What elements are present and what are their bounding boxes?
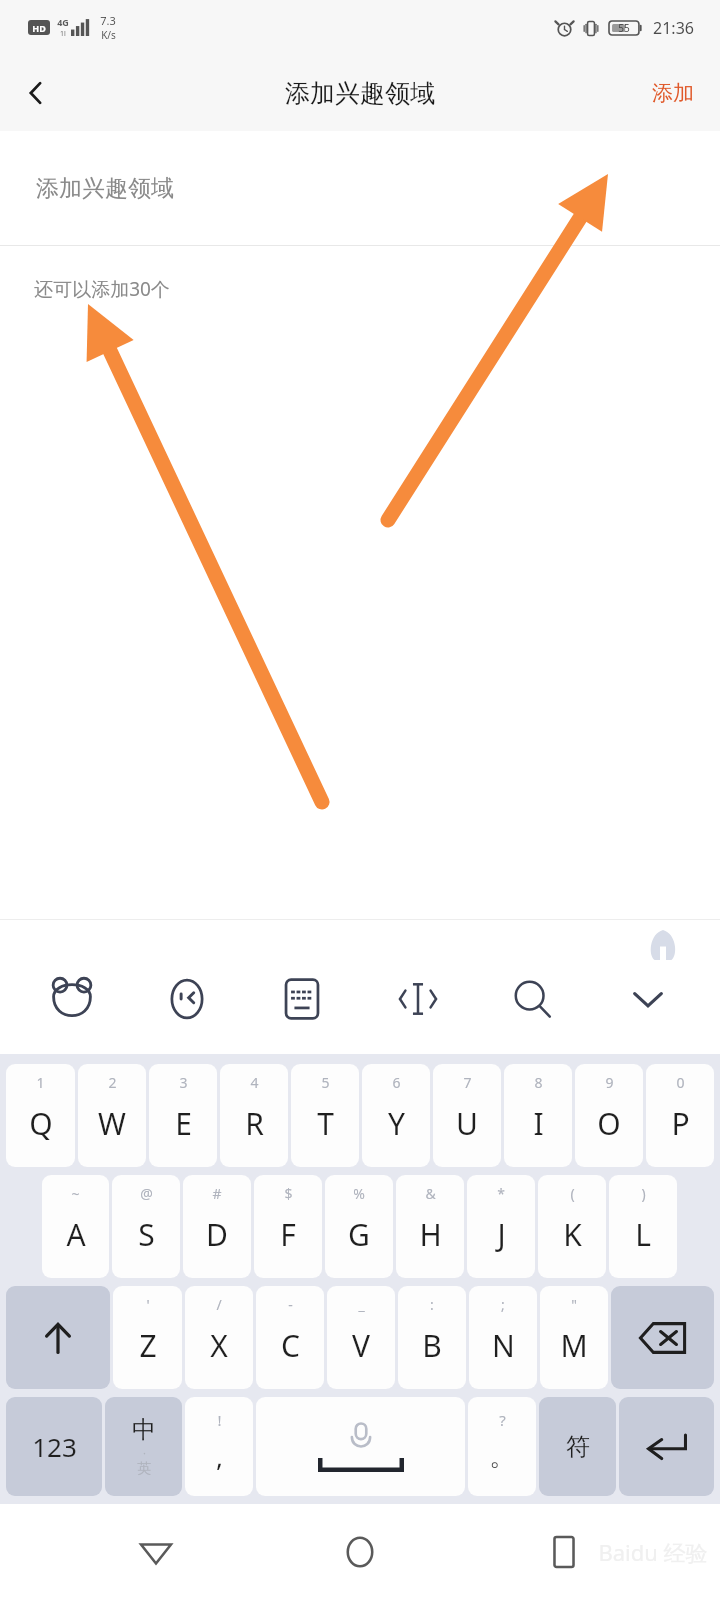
button[interactable]: & [396, 1175, 464, 1278]
button[interactable]: Backspace [611, 1286, 714, 1389]
button[interactable]: Recents [516, 1504, 612, 1600]
staticText: D [206, 1214, 228, 1255]
staticText: ? [499, 1410, 506, 1430]
button[interactable]: _ [327, 1286, 395, 1389]
staticText: P [671, 1103, 690, 1144]
staticText: X [210, 1325, 228, 1366]
staticText: $ [284, 1184, 293, 1203]
staticText: 4 [250, 1073, 259, 1092]
staticText: ~ [71, 1184, 80, 1203]
staticText: ' [146, 1295, 150, 1314]
staticText: W [98, 1103, 126, 1144]
button[interactable]: Cursor control [375, 962, 461, 1036]
button[interactable]: Baidu input [29, 962, 115, 1036]
button[interactable]: % [325, 1175, 393, 1278]
button[interactable]: 添加兴趣领域 [0, 131, 720, 245]
button[interactable]: Shift [6, 1286, 110, 1389]
staticText: , [216, 1439, 223, 1474]
button[interactable]: ; [469, 1286, 537, 1389]
button[interactable]: 2 [78, 1064, 146, 1167]
button[interactable]: @ [112, 1175, 180, 1278]
button[interactable]: Hide keyboard [605, 962, 691, 1036]
staticText: 7 [463, 1073, 472, 1092]
button[interactable]: Space [256, 1397, 465, 1496]
button[interactable]: ' [113, 1286, 182, 1389]
staticText: F [280, 1214, 296, 1255]
button[interactable]: Symbols [539, 1397, 616, 1496]
button[interactable]: " [540, 1286, 608, 1389]
staticText: 55 [618, 21, 630, 35]
button[interactable]: Keyboard layout [259, 962, 345, 1036]
staticText: 添加兴趣领域 [36, 174, 174, 203]
button[interactable]: 6 [362, 1064, 430, 1167]
staticText: U [456, 1103, 478, 1144]
staticText: J [497, 1214, 506, 1255]
staticText: _ [358, 1295, 365, 1314]
staticText: 2 [108, 1073, 117, 1092]
staticText: K/s [101, 28, 116, 42]
staticText: & [425, 1184, 436, 1203]
staticText: 还可以添加30个 [34, 276, 170, 302]
staticText: / [216, 1295, 222, 1314]
staticText: L [635, 1214, 651, 1255]
button[interactable]: $ [254, 1175, 322, 1278]
button[interactable]: Back [0, 57, 72, 129]
staticText: 6 [392, 1073, 401, 1092]
staticText: S [138, 1214, 155, 1255]
button[interactable]: 3 [149, 1064, 217, 1167]
button[interactable]: * [467, 1175, 535, 1278]
staticText: C [281, 1325, 300, 1366]
button[interactable]: ~ [42, 1175, 109, 1278]
staticText: HD [32, 22, 46, 34]
staticText: R [245, 1103, 264, 1144]
staticText: E [175, 1103, 192, 1144]
button[interactable]: ) [609, 1175, 677, 1278]
button[interactable]: Emoji [144, 962, 230, 1036]
button[interactable]: 0 [646, 1064, 714, 1167]
button[interactable]: - [256, 1286, 324, 1389]
staticText: 4G [57, 16, 69, 28]
staticText: M [560, 1325, 588, 1366]
button[interactable]: Switch language [105, 1397, 182, 1496]
staticText: Q [29, 1103, 53, 1144]
staticText: 3 [179, 1073, 188, 1092]
staticText: · [143, 1445, 146, 1460]
button[interactable]: : [398, 1286, 466, 1389]
button[interactable]: 4 [220, 1064, 288, 1167]
button[interactable]: ( [538, 1175, 606, 1278]
button[interactable]: 8 [504, 1064, 572, 1167]
staticText: 1l [60, 29, 66, 39]
staticText: 添加兴趣领域 [285, 78, 435, 109]
staticText: 5 [321, 1073, 330, 1092]
staticText: @ [140, 1184, 153, 1203]
staticText: H [419, 1214, 442, 1255]
button[interactable]: Back [108, 1504, 204, 1600]
button[interactable]: Search [490, 962, 576, 1036]
button[interactable]: 添加 [626, 66, 720, 120]
button[interactable]: 9 [575, 1064, 643, 1167]
staticText: ; [501, 1295, 505, 1314]
button[interactable]: ! [185, 1397, 253, 1496]
button[interactable]: 1 [6, 1064, 75, 1167]
button[interactable]: Home [312, 1504, 408, 1600]
staticText: 符 [566, 1432, 590, 1462]
staticText: K [563, 1214, 582, 1255]
button[interactable]: 7 [433, 1064, 501, 1167]
staticText: ) [641, 1184, 646, 1203]
staticText: ! [217, 1410, 222, 1430]
staticText: I [533, 1103, 544, 1144]
staticText: T [317, 1103, 334, 1144]
button[interactable]: / [185, 1286, 253, 1389]
staticText: 7.3 [100, 13, 116, 28]
staticText: 21:36 [653, 17, 694, 39]
staticText: 中 [132, 1415, 156, 1445]
button[interactable]: # [183, 1175, 251, 1278]
staticText: O [597, 1103, 621, 1144]
staticText: # [212, 1184, 222, 1203]
button[interactable]: Numbers [6, 1397, 102, 1496]
button[interactable]: ? [468, 1397, 536, 1496]
staticText: Baidu 经验 [598, 1537, 708, 1567]
button[interactable]: 5 [291, 1064, 359, 1167]
button[interactable]: Enter [619, 1397, 714, 1496]
staticText: N [492, 1325, 515, 1366]
